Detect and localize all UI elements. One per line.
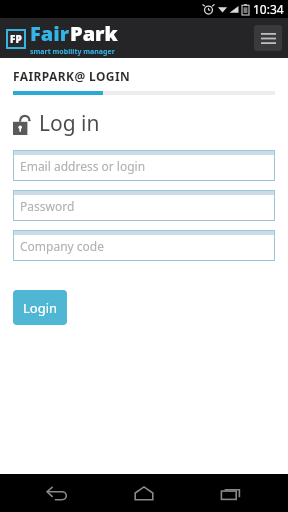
- button[interactable]: Back: [27, 474, 87, 512]
- button[interactable]: Password: [13, 190, 275, 221]
- button[interactable]: Login: [13, 290, 67, 325]
- staticText: Login: [23, 299, 58, 317]
- staticText: smart mobility manager: [30, 47, 115, 57]
- staticText: 10:34: [253, 1, 284, 17]
- staticText: Fair: [30, 20, 70, 47]
- button[interactable]: Company code: [13, 230, 275, 261]
- staticText: Password: [20, 198, 75, 214]
- staticText: FP: [10, 32, 22, 46]
- staticText: FAIRPARK@ LOGIN: [13, 68, 131, 84]
- staticText: Log in: [39, 109, 100, 138]
- button[interactable]: Recent apps: [201, 474, 261, 512]
- staticText: Park: [70, 20, 118, 47]
- button[interactable]: Email address or login: [13, 150, 275, 181]
- staticText: Email address or login: [20, 158, 146, 174]
- button[interactable]: Menu: [254, 25, 282, 51]
- button[interactable]: Home: [114, 474, 174, 512]
- button[interactable]: FAIRPARK@ LOGIN: [13, 68, 131, 84]
- staticText: Company code: [20, 238, 105, 254]
